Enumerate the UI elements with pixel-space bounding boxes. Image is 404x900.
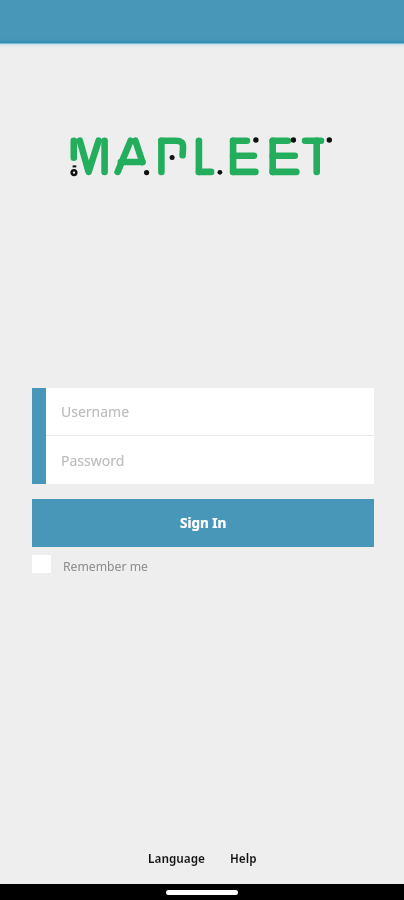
button[interactable]: Remember me (32, 555, 148, 573)
button[interactable]: Sign In (32, 499, 374, 547)
button[interactable]: Help (230, 851, 257, 867)
button[interactable]: Username (46, 388, 374, 435)
staticText: Password (61, 451, 125, 470)
staticText: Username (61, 402, 130, 421)
staticText: Remember me (63, 558, 148, 575)
button[interactable]: Language (148, 851, 206, 867)
button[interactable]: Password (46, 436, 374, 484)
staticText: Sign In (180, 514, 227, 532)
